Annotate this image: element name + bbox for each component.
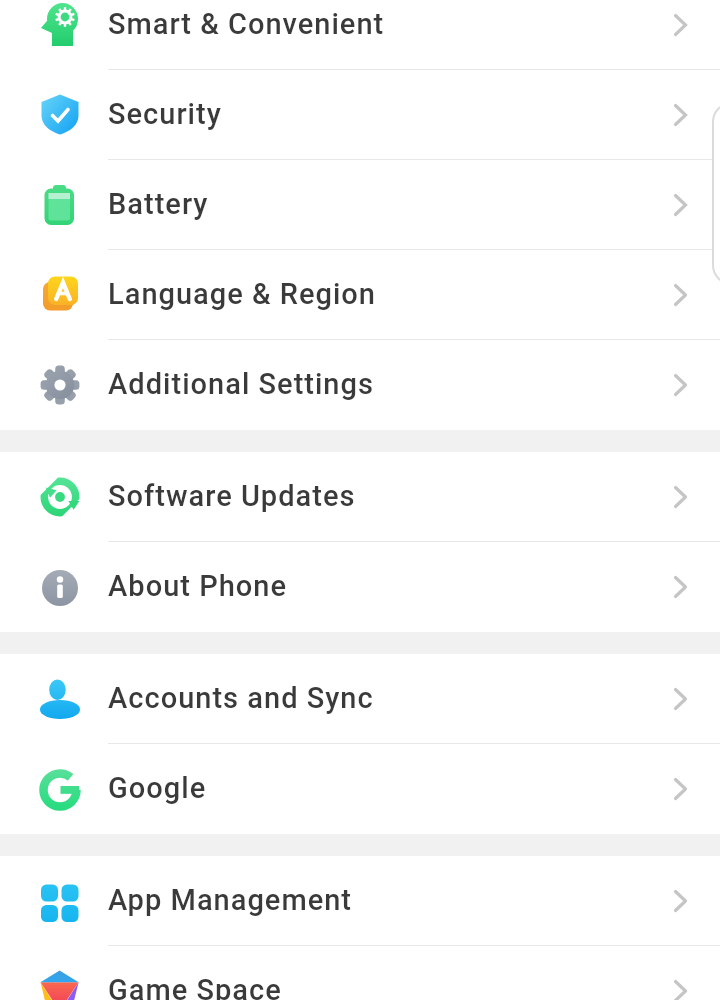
staticText: Accounts and Sync: [108, 681, 374, 715]
staticText: Google: [108, 771, 207, 805]
staticText: About Phone: [108, 569, 287, 603]
staticText: Smart & Convenient: [108, 7, 385, 41]
staticText: Battery: [108, 187, 209, 221]
button[interactable]: Security: [0, 70, 720, 160]
button[interactable]: Accounts and Sync: [0, 654, 720, 744]
button[interactable]: Smart & Convenient: [0, 0, 720, 70]
staticText: Additional Settings: [108, 367, 374, 401]
button[interactable]: Language & Region: [0, 250, 720, 340]
button[interactable]: About Phone: [0, 542, 720, 632]
button[interactable]: Google: [0, 744, 720, 834]
button[interactable]: Battery: [0, 160, 720, 250]
button[interactable]: Game Space: [0, 946, 720, 1000]
staticText: Game Space: [108, 973, 282, 1000]
button[interactable]: App Management: [0, 856, 720, 946]
staticText: Software Updates: [108, 479, 356, 513]
staticText: Language & Region: [108, 277, 376, 311]
staticText: Security: [108, 97, 222, 131]
button[interactable]: Software Updates: [0, 452, 720, 542]
staticText: App Management: [108, 883, 353, 917]
button[interactable]: Additional Settings: [0, 340, 720, 430]
